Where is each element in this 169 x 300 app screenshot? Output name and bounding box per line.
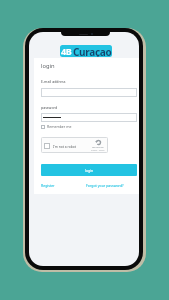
button[interactable]: Forgot your password? — [86, 183, 124, 188]
button[interactable]: 4B Curacao logo — [60, 45, 112, 57]
button[interactable]: Register — [41, 183, 55, 188]
staticText: Privacy - Terms — [91, 149, 105, 152]
staticText: reCAPTCHA — [92, 146, 104, 149]
staticText: Curaçao — [73, 45, 112, 57]
staticText: Remember me — [47, 124, 72, 129]
staticText: I'm not a robot — [53, 144, 76, 148]
button[interactable]: E-mail address field — [41, 88, 137, 97]
staticText: login — [41, 62, 55, 70]
staticText: login — [85, 168, 94, 173]
staticText: password — [41, 105, 58, 110]
button[interactable]: login — [41, 164, 137, 176]
button[interactable]: Password field — [41, 113, 137, 122]
button[interactable]: Remember me — [41, 124, 72, 129]
staticText: 4B — [61, 45, 72, 57]
button[interactable]: I'm not a robot reCAPTCHA — [41, 137, 108, 153]
staticText: E-mail address — [41, 79, 66, 84]
